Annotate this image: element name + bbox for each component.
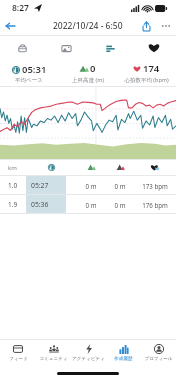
staticText: アクティビティ	[72, 356, 105, 362]
button[interactable]: 作成履歴	[106, 344, 141, 362]
staticText: 176 bpm	[134, 201, 176, 209]
staticText: 05:27	[31, 181, 49, 190]
button[interactable]: Like	[132, 36, 176, 60]
staticText: 0 m	[76, 182, 106, 190]
button[interactable]: コミュニティ	[36, 344, 71, 362]
staticText: プロフィール	[144, 356, 173, 362]
staticText: 2022/10/24 - 6:50	[53, 20, 123, 32]
staticText: 0 m	[106, 182, 134, 190]
button[interactable]: Charts	[88, 36, 132, 60]
staticText: 8:27	[12, 2, 29, 14]
staticText: 0 m	[76, 201, 106, 209]
staticText: コミュニティ	[39, 356, 68, 362]
button[interactable]: More options	[156, 16, 176, 36]
staticText: km	[8, 164, 26, 172]
staticText: フィード	[9, 356, 28, 362]
staticText: 05:36	[31, 200, 49, 209]
staticText: 上昇高度 (m)	[72, 76, 104, 84]
button[interactable]: アクティビティ	[71, 344, 106, 362]
staticText: 0	[90, 62, 96, 75]
staticText: 作成履歴	[114, 356, 133, 362]
button[interactable]: Share	[136, 16, 156, 36]
staticText: 平均ペース	[15, 77, 43, 84]
staticText: 174	[143, 62, 160, 75]
staticText: 0 m	[106, 201, 134, 209]
button[interactable]: プロフィール	[141, 344, 176, 362]
staticText: 1.0	[8, 181, 26, 190]
staticText: 05:31	[22, 63, 47, 76]
button[interactable]: Achievements	[0, 36, 44, 60]
staticText: 173 bpm	[134, 182, 176, 190]
button[interactable]: Back	[0, 16, 20, 36]
button[interactable]: Photos	[44, 36, 88, 60]
staticText: 心拍数平均 (bpm)	[124, 76, 169, 84]
staticText: 1.9	[8, 200, 26, 209]
button[interactable]: フィード	[0, 344, 36, 362]
